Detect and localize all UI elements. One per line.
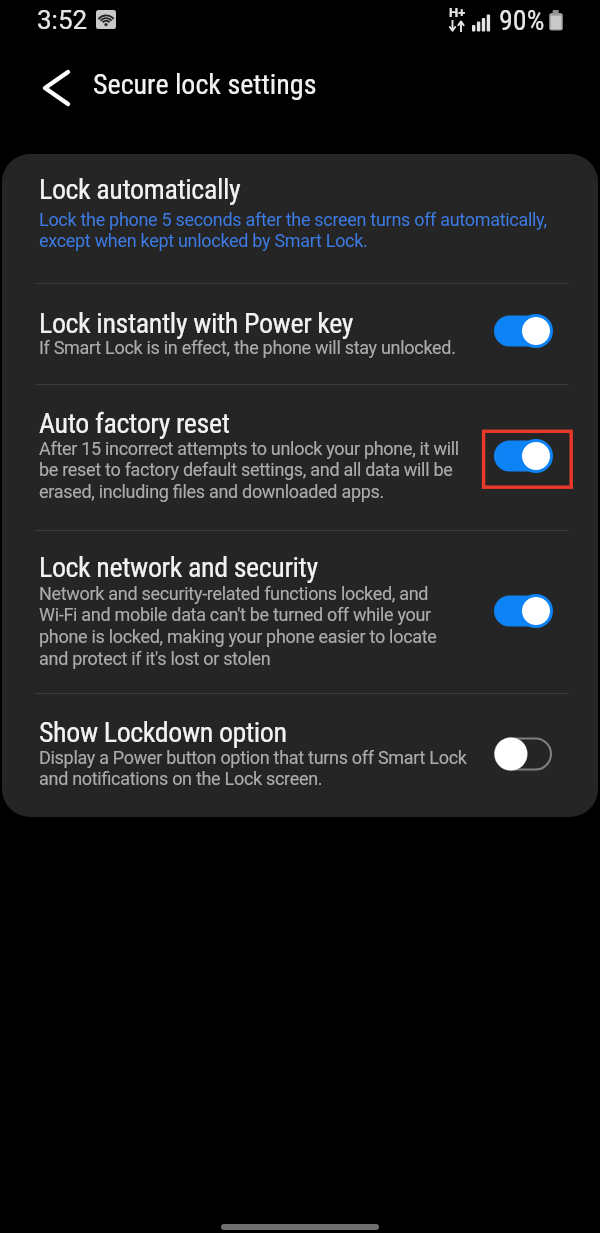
button[interactable]: Lock network and security (2, 530, 598, 693)
staticText: H+ (449, 5, 466, 20)
staticText: Lock network and security (39, 551, 318, 584)
staticText: Lock automatically (39, 173, 241, 206)
staticText: 90% (499, 4, 545, 37)
staticText: Auto factory reset (39, 407, 230, 440)
button[interactable]: Lock instantly with Power key (2, 283, 598, 384)
staticText: Lock the phone 5 seconds after the scree… (39, 209, 547, 252)
button[interactable]: Lock automatically (2, 154, 598, 283)
staticText: Show Lockdown option (39, 716, 287, 749)
staticText: Secure lock settings (93, 68, 317, 101)
staticText: Lock instantly with Power key (39, 307, 354, 340)
button[interactable]: Auto factory reset (2, 384, 598, 530)
staticText: Network and security-related functions l… (39, 583, 437, 670)
staticText: After 15 incorrect attempts to unlock yo… (39, 438, 459, 503)
staticText: If Smart Lock is in effect, the phone wi… (39, 337, 456, 358)
button[interactable]: Show Lockdown option (2, 693, 598, 817)
staticText: 3:52 (37, 5, 88, 35)
button[interactable] (221, 1224, 379, 1230)
staticText: Display a Power button option that turns… (39, 747, 467, 790)
button[interactable] (30, 62, 82, 114)
